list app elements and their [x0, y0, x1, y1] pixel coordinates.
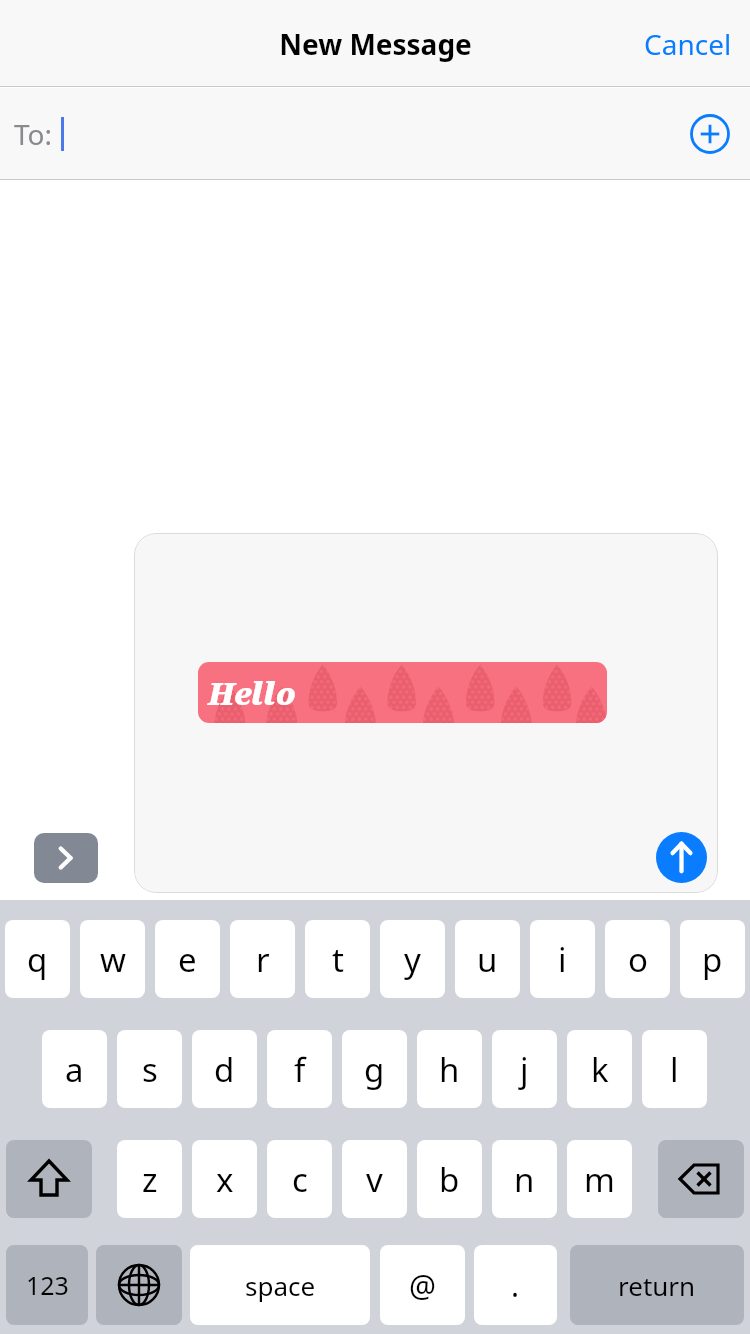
button[interactable]: k [567, 1030, 632, 1108]
staticText: r [256, 937, 270, 982]
button[interactable]: w [80, 920, 145, 998]
button[interactable]: t [305, 920, 370, 998]
staticText: l [670, 1047, 679, 1092]
staticText: n [514, 1157, 535, 1202]
button[interactable]: Backspace [658, 1140, 744, 1218]
button[interactable]: x [192, 1140, 257, 1218]
button[interactable]: l [642, 1030, 707, 1108]
staticText: q [27, 937, 48, 982]
staticText: i [558, 937, 567, 982]
button[interactable]: g [342, 1030, 407, 1108]
staticText: a [65, 1047, 84, 1092]
staticText: f [294, 1047, 306, 1092]
button[interactable]: Cancel [626, 11, 750, 77]
button[interactable]: s [117, 1030, 182, 1108]
staticText: c [292, 1157, 308, 1202]
button[interactable]: v [342, 1140, 407, 1218]
staticText: space [245, 1268, 316, 1303]
button[interactable]: b [417, 1140, 482, 1218]
staticText: u [477, 937, 498, 982]
button[interactable]: y [380, 920, 445, 998]
staticText: m [584, 1157, 615, 1202]
staticText: New Message [279, 25, 472, 63]
button[interactable]: c [267, 1140, 332, 1218]
staticText: e [178, 937, 197, 982]
staticText: . [511, 1265, 520, 1306]
button[interactable]: Add contact [690, 114, 730, 154]
staticText: b [439, 1157, 460, 1202]
staticText: p [702, 937, 723, 982]
staticText: @ [409, 1265, 436, 1306]
button[interactable]: Hello [198, 662, 607, 723]
button[interactable]: Hello [134, 533, 718, 893]
button[interactable]: 123 [6, 1245, 88, 1325]
staticText: Hello [208, 672, 296, 714]
staticText: To: [14, 115, 53, 153]
button[interactable]: z [117, 1140, 182, 1218]
button[interactable]: j [492, 1030, 557, 1108]
button[interactable]: Send [656, 832, 707, 883]
button[interactable]: @ [380, 1245, 465, 1325]
button[interactable]: h [417, 1030, 482, 1108]
staticText: x [216, 1157, 234, 1202]
button[interactable]: p [680, 920, 745, 998]
staticText: return [618, 1268, 696, 1303]
button[interactable]: o [605, 920, 670, 998]
staticText: d [214, 1047, 235, 1092]
staticText: v [366, 1157, 383, 1202]
button[interactable]: u [455, 920, 520, 998]
staticText: 123 [26, 1268, 69, 1302]
button[interactable]: q [5, 920, 70, 998]
button[interactable]: d [192, 1030, 257, 1108]
staticText: w [100, 937, 126, 982]
button[interactable]: r [230, 920, 295, 998]
button[interactable]: Change keyboard [96, 1245, 182, 1325]
button[interactable]: n [492, 1140, 557, 1218]
staticText: z [142, 1157, 158, 1202]
button[interactable]: Shift [6, 1140, 92, 1218]
button[interactable]: space [190, 1245, 370, 1325]
button[interactable]: return [570, 1245, 744, 1325]
staticText: k [591, 1047, 609, 1092]
button[interactable]: m [567, 1140, 632, 1218]
button[interactable]: . [474, 1245, 557, 1325]
staticText: s [142, 1047, 158, 1092]
staticText: y [404, 937, 421, 982]
button[interactable]: f [267, 1030, 332, 1108]
staticText: j [520, 1047, 529, 1092]
staticText: g [364, 1047, 385, 1092]
staticText: o [628, 937, 648, 982]
button[interactable]: More iMessage apps [34, 833, 98, 883]
button[interactable]: e [155, 920, 220, 998]
staticText: t [332, 937, 344, 982]
button[interactable]: a [42, 1030, 107, 1108]
staticText: h [439, 1047, 460, 1092]
staticText: Cancel [644, 25, 732, 63]
button[interactable]: i [530, 920, 595, 998]
